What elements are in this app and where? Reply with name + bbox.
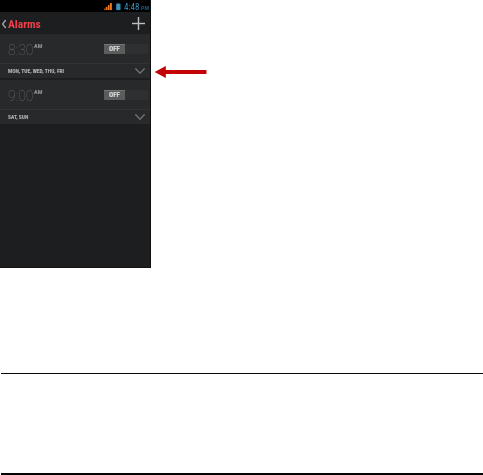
button[interactable]: Back to Alarms [0, 17, 44, 30]
button[interactable]: OFF [104, 90, 148, 100]
staticText: Alarms [8, 17, 41, 30]
staticText: PM [141, 4, 149, 11]
button[interactable]: MON, TUE, WED, THU, FRI [0, 64, 151, 78]
staticText: OFF [109, 45, 120, 53]
staticText: AM [34, 42, 43, 49]
button[interactable]: SAT, SUN [0, 110, 151, 124]
staticText: MON, TUE, WED, THU, FRI [8, 68, 65, 74]
staticText: 8:30 [8, 42, 34, 56]
staticText: 4:48 [124, 2, 140, 13]
button[interactable]: 8:30 [0, 34, 151, 63]
staticText: 9:00 [8, 88, 34, 102]
button[interactable]: OFF [104, 44, 148, 54]
button[interactable]: Add alarm [127, 12, 149, 34]
button[interactable]: 9:00 [0, 80, 151, 109]
staticText: AM [34, 88, 43, 95]
staticText: SAT, SUN [8, 114, 29, 120]
staticText: OFF [109, 91, 120, 99]
